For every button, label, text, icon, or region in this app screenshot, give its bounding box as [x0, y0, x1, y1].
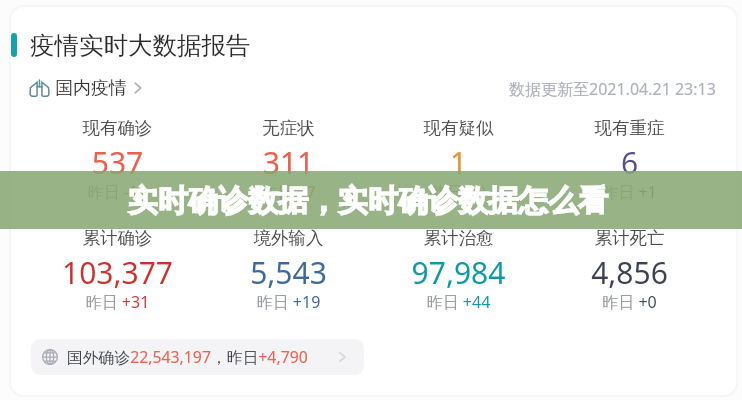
staticText: 537 [32, 142, 203, 183]
staticText: 境外输入 [203, 227, 374, 249]
button[interactable]: 现有确诊 [32, 117, 203, 215]
button[interactable]: 现有重症 [544, 117, 715, 215]
staticText: 现有确诊 [32, 117, 203, 139]
staticText: 累计死亡 [544, 227, 715, 249]
staticText: 昨日 +7 [203, 181, 374, 203]
staticText: 昨日 -16 [32, 181, 203, 203]
staticText: 实时确诊数据，实时确诊数据怎么看 [128, 182, 608, 220]
staticText: 现有重症 [544, 117, 715, 139]
staticText: 昨日 +0 [373, 181, 544, 203]
staticText: 国外确诊22,543,197，昨日+4,790 [67, 346, 308, 368]
staticText: 1 [373, 142, 544, 183]
staticText: 6 [544, 142, 715, 183]
button[interactable]: 累计治愈 [373, 227, 544, 325]
staticText: 累计治愈 [373, 227, 544, 249]
staticText: 疫情实时大数据报告 [30, 30, 251, 61]
staticText: 昨日 +19 [203, 291, 374, 313]
button[interactable]: 累计死亡 [544, 227, 715, 325]
staticText: 311 [203, 142, 374, 183]
other: Global cases [42, 349, 58, 365]
staticText: 昨日 +44 [373, 291, 544, 313]
staticText: 5,543 [203, 252, 374, 293]
staticText: 4,856 [544, 252, 715, 293]
staticText: 国内疫情 [55, 77, 127, 100]
button[interactable]: 累计确诊 [32, 227, 203, 325]
staticText: 97,984 [373, 252, 544, 293]
staticText: 昨日 +31 [32, 291, 203, 313]
staticText: 昨日 +0 [544, 291, 715, 313]
staticText: 累计确诊 [32, 227, 203, 249]
button[interactable]: 境外输入 [203, 227, 374, 325]
staticText: 数据更新至2021.04.21 23:13 [509, 78, 716, 100]
staticText: 无症状 [203, 117, 374, 139]
staticText: 现有疑似 [373, 117, 544, 139]
button[interactable]: 无症状 [203, 117, 374, 215]
staticText: 昨日 +1 [544, 181, 715, 203]
button[interactable]: 国内疫情 [29, 76, 143, 100]
staticText: 103,377 [32, 252, 203, 293]
button[interactable]: 现有疑似 [373, 117, 544, 215]
button[interactable]: Global cases [31, 339, 364, 375]
